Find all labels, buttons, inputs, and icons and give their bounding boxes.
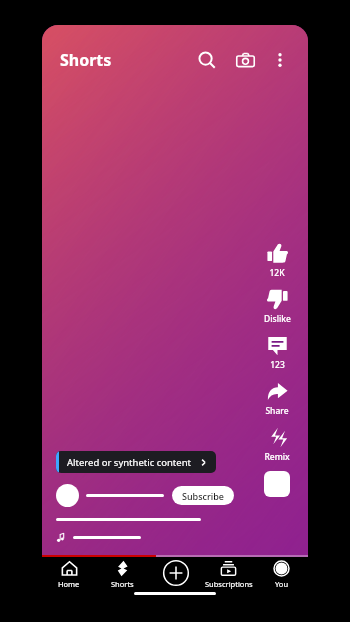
staticText: Home xyxy=(58,579,80,589)
button[interactable]: Shorts xyxy=(96,557,149,591)
staticText: 123 xyxy=(270,359,285,371)
button[interactable]: Home xyxy=(42,557,96,591)
staticText: Subscriptions xyxy=(205,579,253,589)
staticText: Shorts xyxy=(111,579,134,589)
button[interactable]: Like xyxy=(256,243,298,279)
button[interactable]: Subscribe xyxy=(172,486,234,505)
button[interactable]: Search xyxy=(192,45,222,75)
button[interactable]: Share xyxy=(256,381,298,417)
button[interactable]: More options xyxy=(266,46,294,74)
staticText: Dislike xyxy=(264,313,291,325)
staticText: Subscribe xyxy=(182,490,224,502)
button[interactable]: Remix xyxy=(256,427,298,463)
staticText: You xyxy=(275,579,289,589)
button[interactable]: Sound thumbnail xyxy=(264,471,290,497)
button[interactable]: Subscriptions xyxy=(202,557,255,591)
staticText: 12K xyxy=(269,267,285,279)
button[interactable]: Camera xyxy=(230,45,260,75)
button[interactable]: Dislike xyxy=(256,289,298,325)
button[interactable]: Create xyxy=(149,557,202,591)
staticText: Share xyxy=(265,405,289,417)
button[interactable]: Altered or synthetic content xyxy=(56,451,216,473)
staticText: Remix xyxy=(264,451,290,463)
button[interactable]: Comments xyxy=(256,335,298,371)
button[interactable]: Channel avatar xyxy=(56,484,79,507)
staticText: Shorts xyxy=(60,49,112,71)
button[interactable]: You xyxy=(255,557,308,591)
staticText: Altered or synthetic content xyxy=(67,456,191,469)
